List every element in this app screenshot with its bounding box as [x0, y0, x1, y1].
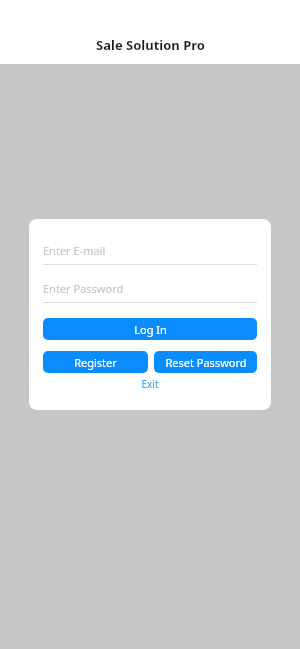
button[interactable]: Reset Password: [154, 351, 257, 373]
staticText: Register: [74, 355, 117, 370]
staticText: Reset Password: [165, 355, 247, 370]
button[interactable]: Log In: [43, 318, 257, 340]
staticText: Sale Solution Pro: [96, 36, 205, 54]
button[interactable]: Enter E-mail: [43, 240, 257, 261]
staticText: Exit: [141, 377, 159, 391]
button[interactable]: Exit: [135, 376, 165, 392]
staticText: Enter E-mail: [43, 243, 106, 258]
button[interactable]: Enter Password: [43, 278, 257, 299]
button[interactable]: Register: [43, 351, 148, 373]
staticText: Log In: [134, 322, 167, 337]
staticText: Enter Password: [43, 281, 124, 296]
